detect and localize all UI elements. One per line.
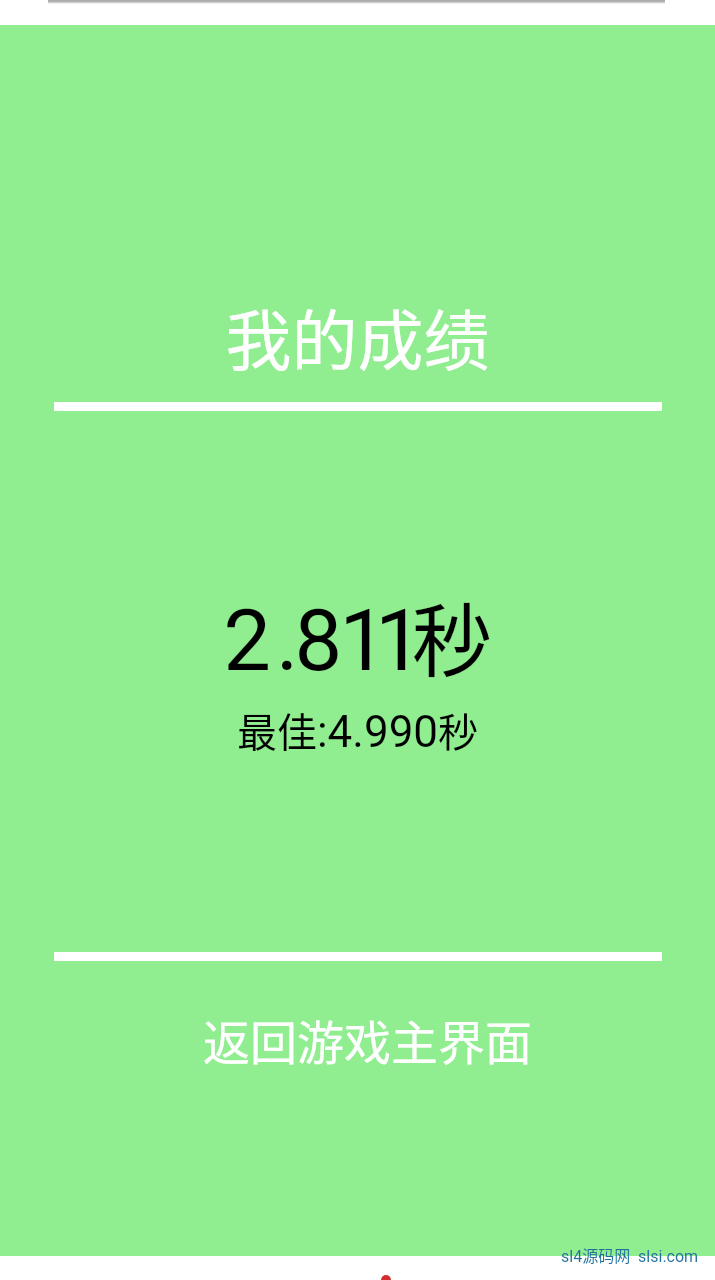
staticText: 我的成绩 xyxy=(0,288,715,384)
staticText: 返回游戏主界面 xyxy=(203,1005,532,1073)
staticText: 最佳:4.990秒 xyxy=(0,701,715,759)
staticText: 2.811秒 xyxy=(0,577,715,687)
other: Record xyxy=(381,1275,391,1280)
staticText: sl4源码网 slsi.com xyxy=(561,1243,699,1266)
